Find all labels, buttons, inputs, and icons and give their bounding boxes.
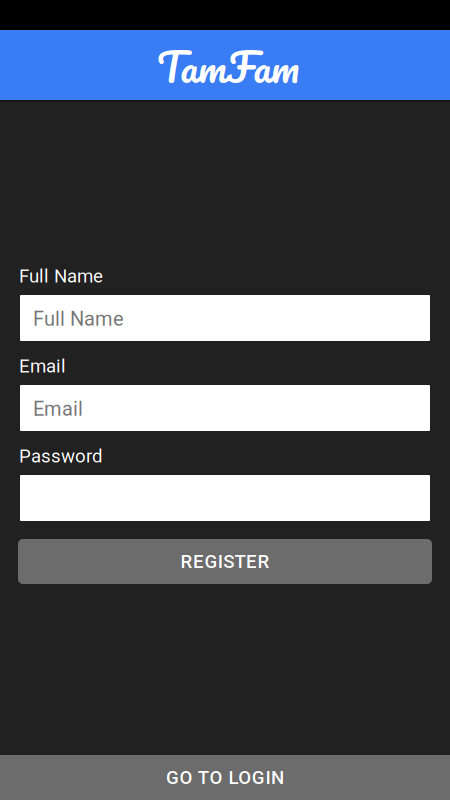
staticText: Email <box>19 355 66 377</box>
staticText: TamFam <box>157 33 299 100</box>
button[interactable]: Email <box>20 385 430 431</box>
staticText: Email <box>33 397 83 421</box>
staticText: Full Name <box>33 307 124 331</box>
staticText: GO TO LOGIN <box>166 767 284 788</box>
button[interactable]: Full Name <box>20 295 430 341</box>
button[interactable]: GO TO LOGIN <box>0 755 450 800</box>
button[interactable]: REGISTER <box>0 539 450 584</box>
staticText: REGISTER <box>181 551 269 572</box>
staticText: Full Name <box>19 265 103 287</box>
staticText: Password <box>19 445 103 467</box>
